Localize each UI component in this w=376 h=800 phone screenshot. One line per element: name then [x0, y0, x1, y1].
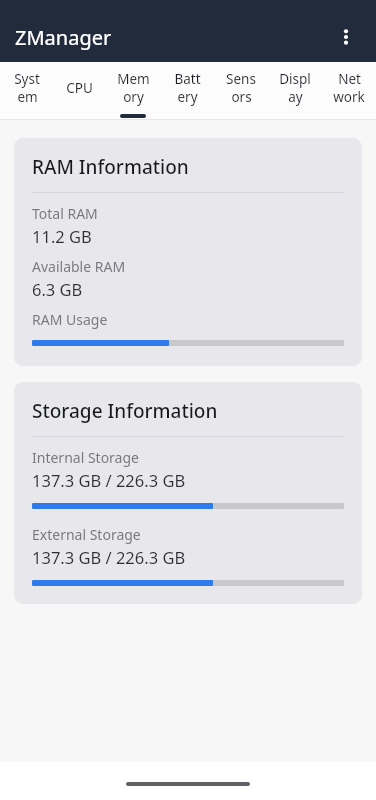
button[interactable]: Sens — [214, 62, 268, 120]
staticText: Storage Information — [32, 398, 218, 424]
staticText: External Storage — [32, 525, 141, 544]
staticText: RAM Information — [32, 154, 189, 180]
staticText: ors — [231, 88, 252, 106]
button[interactable]: Syst — [0, 62, 53, 120]
button[interactable]: Net — [322, 62, 376, 120]
staticText: Net — [338, 70, 361, 88]
button[interactable]: Displ — [268, 62, 322, 120]
staticText: 137.3 GB / 226.3 GB — [32, 469, 186, 491]
staticText: ory — [123, 88, 144, 106]
staticText: 137.3 GB / 226.3 GB — [32, 546, 186, 568]
staticText: Mem — [117, 70, 150, 88]
staticText: ZManager — [15, 24, 112, 51]
staticText: em — [17, 88, 38, 106]
staticText: 6.3 GB — [32, 278, 83, 300]
button[interactable]: Mem — [106, 62, 160, 120]
staticText: ay — [288, 88, 303, 106]
staticText: RAM Usage — [32, 310, 108, 329]
staticText: Syst — [14, 70, 40, 88]
staticText: Total RAM — [32, 204, 98, 223]
button[interactable]: More options — [324, 15, 368, 59]
staticText: Batt — [174, 70, 201, 88]
staticText: Displ — [279, 70, 311, 88]
staticText: Available RAM — [32, 257, 126, 276]
staticText: 11.2 GB — [32, 225, 92, 247]
button[interactable]: Batt — [160, 62, 214, 120]
staticText: Internal Storage — [32, 448, 139, 467]
staticText: work — [333, 88, 365, 106]
button[interactable]: Storage Information — [14, 382, 362, 604]
staticText: CPU — [66, 79, 93, 97]
staticText: Sens — [226, 70, 256, 88]
staticText: ery — [177, 88, 198, 106]
button[interactable]: RAM Information — [14, 138, 362, 366]
button[interactable]: CPU — [53, 62, 106, 120]
